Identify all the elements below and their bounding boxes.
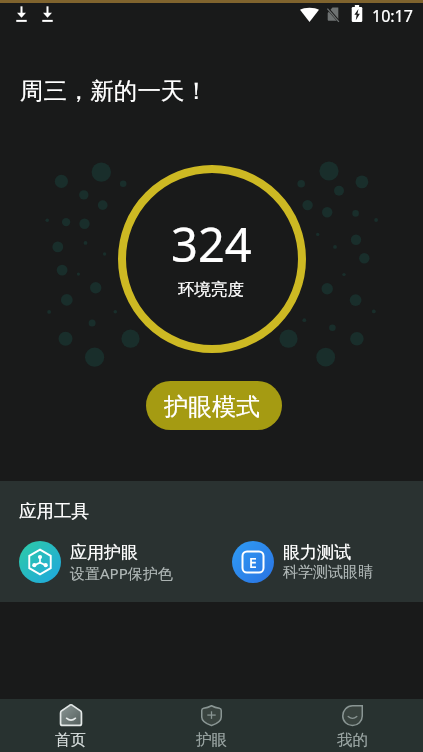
staticText: 周三，新的一天！ — [20, 76, 208, 106]
button[interactable]: Home — [0, 701, 141, 750]
other: Home — [60, 704, 82, 726]
staticText: 我的 — [337, 730, 368, 750]
button[interactable]: E — [232, 541, 423, 583]
button[interactable]: Profile — [282, 702, 423, 750]
other: Profile — [342, 705, 363, 726]
staticText: 科学测试眼睛 — [283, 563, 373, 582]
button[interactable]: Eye protection — [141, 702, 282, 750]
staticText: 设置APP保护色 — [70, 563, 173, 583]
staticText: 眼力测试 — [283, 542, 351, 563]
staticText: 10:17 — [372, 5, 413, 27]
staticText: 首页 — [55, 730, 86, 750]
staticText: 护眼 — [196, 730, 227, 750]
button[interactable]: 应用护眼 — [19, 541, 211, 583]
other: Eye protection — [201, 705, 222, 726]
staticText: 324 — [171, 212, 252, 276]
button[interactable]: 护眼模式 — [146, 381, 282, 430]
staticText: 应用工具 — [19, 500, 89, 522]
staticText: 护眼模式 — [164, 392, 260, 422]
staticText: 环境亮度 — [178, 279, 244, 300]
staticText: 应用护眼 — [70, 542, 138, 563]
staticText: E — [249, 553, 257, 572]
